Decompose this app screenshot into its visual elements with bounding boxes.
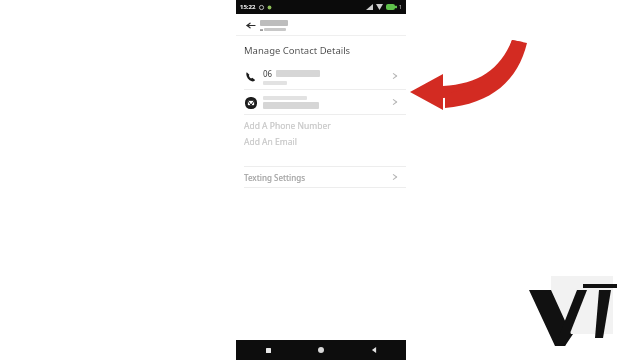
staticText: 1 [399,4,402,11]
button[interactable]: Add A Phone Number [236,118,406,134]
button[interactable]: Back [368,344,380,356]
staticText: 06 [263,68,273,79]
button[interactable]: Back [243,18,257,32]
button[interactable]: Texting Settings [236,167,406,187]
staticText: Texting Settings [244,172,391,183]
button[interactable]: Home [315,344,327,356]
button[interactable]: Add An Email [236,134,406,150]
button[interactable] [236,90,406,114]
button[interactable]: 06 [236,63,406,89]
staticText: Add An Email [244,136,297,148]
staticText: Manage Contact Details [244,44,351,57]
staticText: Add A Phone Number [244,120,331,132]
button[interactable]: Recents [262,344,274,356]
staticText: 15:22 [240,3,256,11]
